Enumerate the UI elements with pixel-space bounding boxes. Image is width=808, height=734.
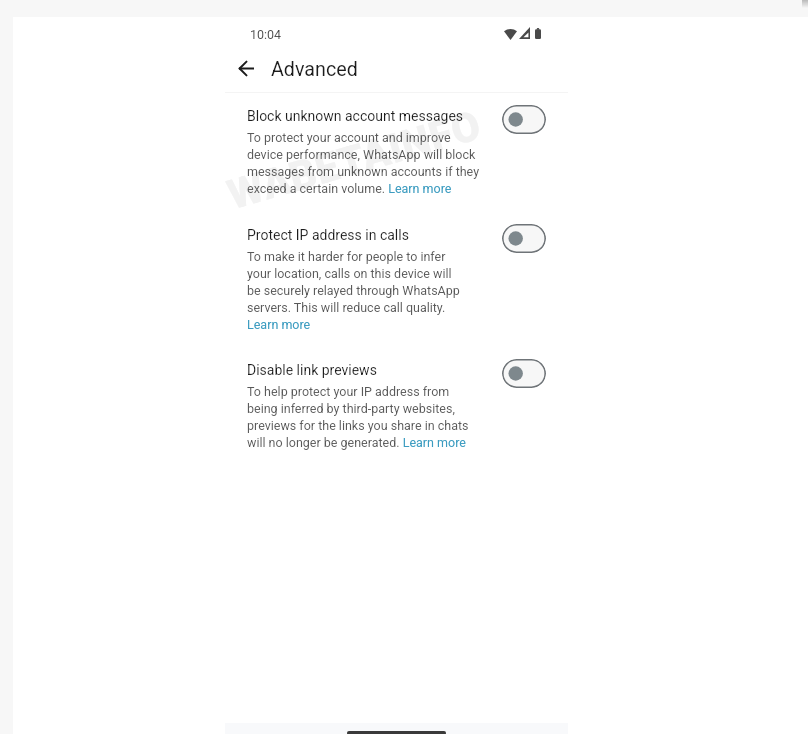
staticText: WABETAINFO	[222, 101, 486, 219]
staticText: Advanced	[271, 58, 358, 81]
staticText: To help protect your IP address from bei…	[247, 384, 469, 450]
button[interactable]: Back	[229, 51, 263, 85]
button[interactable]: Block unknown account messages	[225, 108, 568, 196]
button[interactable]: Protect IP address in calls	[225, 227, 568, 332]
staticText: To protect your account and improve devi…	[247, 130, 480, 196]
button[interactable]: Toggle off	[502, 224, 546, 253]
staticText: Protect IP address in calls	[247, 227, 409, 243]
staticText: Block unknown account messages	[247, 108, 464, 124]
staticText: Disable link previews	[247, 362, 377, 378]
button[interactable]: Disable link previews	[225, 362, 568, 450]
staticText: To make it harder for people to infer yo…	[247, 249, 460, 332]
button[interactable]: Toggle off	[502, 105, 546, 134]
button[interactable]: Toggle off	[502, 359, 546, 388]
staticText: 10:04	[250, 27, 282, 42]
